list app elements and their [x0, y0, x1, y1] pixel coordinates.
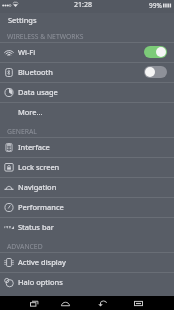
button[interactable]: Home — [59, 296, 71, 310]
button[interactable]: Interface — [0, 137, 174, 157]
staticText: 99% — [149, 1, 162, 10]
staticText: Data usage — [18, 87, 58, 97]
staticText: Active display — [18, 257, 66, 267]
button[interactable]: Halo options — [0, 272, 174, 292]
staticText: Status bar — [18, 222, 54, 232]
staticText: GENERAL — [7, 127, 37, 136]
button[interactable]: Bluetooth — [0, 62, 174, 82]
button[interactable]: Menu — [132, 296, 144, 310]
button[interactable]: Switch off — [144, 66, 167, 78]
staticText: Halo options — [18, 277, 63, 287]
button[interactable]: Navigation — [0, 177, 174, 197]
staticText: More… — [18, 107, 43, 117]
button[interactable]: Recent apps — [28, 296, 40, 310]
button[interactable]: Data usage — [0, 82, 174, 102]
staticText: Lock screen — [18, 162, 60, 172]
button[interactable]: Status bar — [0, 217, 174, 237]
button[interactable]: Active display — [0, 252, 174, 272]
staticText: Navigation — [18, 182, 57, 192]
button[interactable]: Switch on — [144, 46, 167, 58]
staticText: Wi-Fi — [18, 47, 36, 57]
staticText: Bluetooth — [18, 67, 53, 77]
button[interactable]: Settings — [0, 13, 174, 27]
staticText: ADVANCED — [7, 242, 43, 251]
button[interactable]: More… — [0, 102, 174, 122]
button[interactable]: Back — [96, 296, 108, 310]
button[interactable]: Lock screen — [0, 157, 174, 177]
button[interactable]: Wi-Fi — [0, 42, 174, 62]
staticText: WIRELESS & NETWORKS — [7, 32, 84, 41]
staticText: Settings — [8, 15, 37, 25]
staticText: Interface — [18, 142, 50, 152]
staticText: 21:28 — [74, 0, 92, 10]
staticText: Performance — [18, 202, 64, 212]
button[interactable]: Performance — [0, 197, 174, 217]
